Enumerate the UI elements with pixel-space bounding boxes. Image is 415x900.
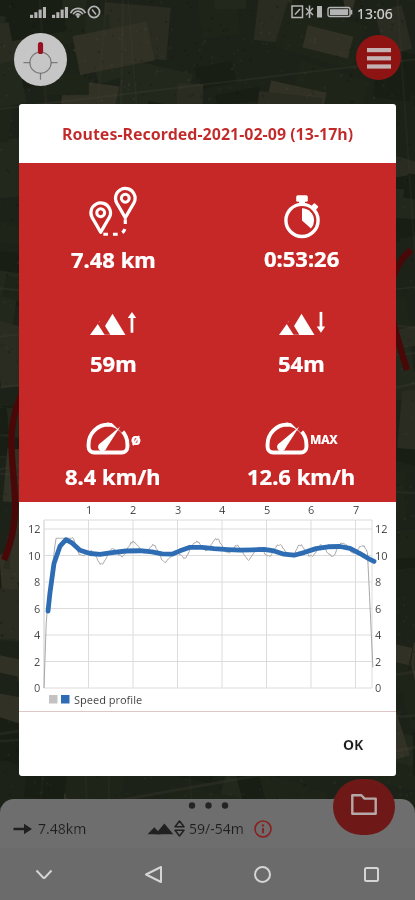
- staticText: Routes-Recorded-2021-02-09 (13-17h): [62, 123, 354, 145]
- staticText: 0:53:26: [264, 243, 340, 273]
- button[interactable]: 7.48km: [0, 799, 415, 848]
- staticText: 7: [353, 502, 360, 517]
- staticText: MAX: [310, 431, 338, 447]
- staticText: 6: [308, 502, 315, 517]
- button[interactable]: Recent apps: [349, 852, 393, 896]
- staticText: 3: [175, 502, 182, 517]
- button[interactable]: Hide keyboard: [22, 852, 66, 896]
- button[interactable]: Home: [240, 852, 284, 896]
- staticText: 8.4 km/h: [65, 461, 161, 491]
- staticText: 12: [28, 521, 41, 536]
- button[interactable]: Menu: [356, 35, 401, 80]
- staticText: 0: [375, 680, 382, 695]
- staticText: 2: [375, 654, 382, 669]
- staticText: 12: [375, 521, 388, 536]
- staticText: 4: [34, 627, 41, 642]
- staticText: ø: [131, 428, 141, 450]
- staticText: 10: [375, 548, 388, 563]
- button[interactable]: Back: [131, 852, 175, 896]
- button[interactable]: Open folder: [333, 779, 395, 835]
- staticText: 1: [86, 502, 93, 517]
- staticText: 0: [34, 680, 41, 695]
- staticText: Speed profile: [74, 692, 143, 707]
- staticText: 2: [130, 502, 137, 517]
- button[interactable]: Info: [254, 820, 272, 838]
- staticText: 54m: [278, 348, 325, 378]
- staticText: 7.48km: [38, 819, 87, 838]
- staticText: 4: [375, 627, 382, 642]
- staticText: 10: [28, 548, 41, 563]
- staticText: 7.48 km: [71, 244, 156, 274]
- staticText: 6: [375, 601, 382, 616]
- staticText: 6: [34, 601, 41, 616]
- staticText: 13:06: [357, 4, 393, 23]
- staticText: OK: [343, 735, 364, 754]
- staticText: 59/-54m: [189, 819, 244, 838]
- staticText: 59m: [90, 348, 137, 378]
- button[interactable]: OK: [333, 727, 374, 762]
- staticText: 5: [264, 502, 271, 517]
- staticText: 12.6 km/h: [247, 461, 356, 491]
- staticText: 2: [34, 654, 41, 669]
- staticText: 4: [219, 502, 226, 517]
- staticText: 8: [375, 574, 382, 589]
- staticText: 8: [34, 574, 41, 589]
- button[interactable]: Compass: [14, 33, 67, 86]
